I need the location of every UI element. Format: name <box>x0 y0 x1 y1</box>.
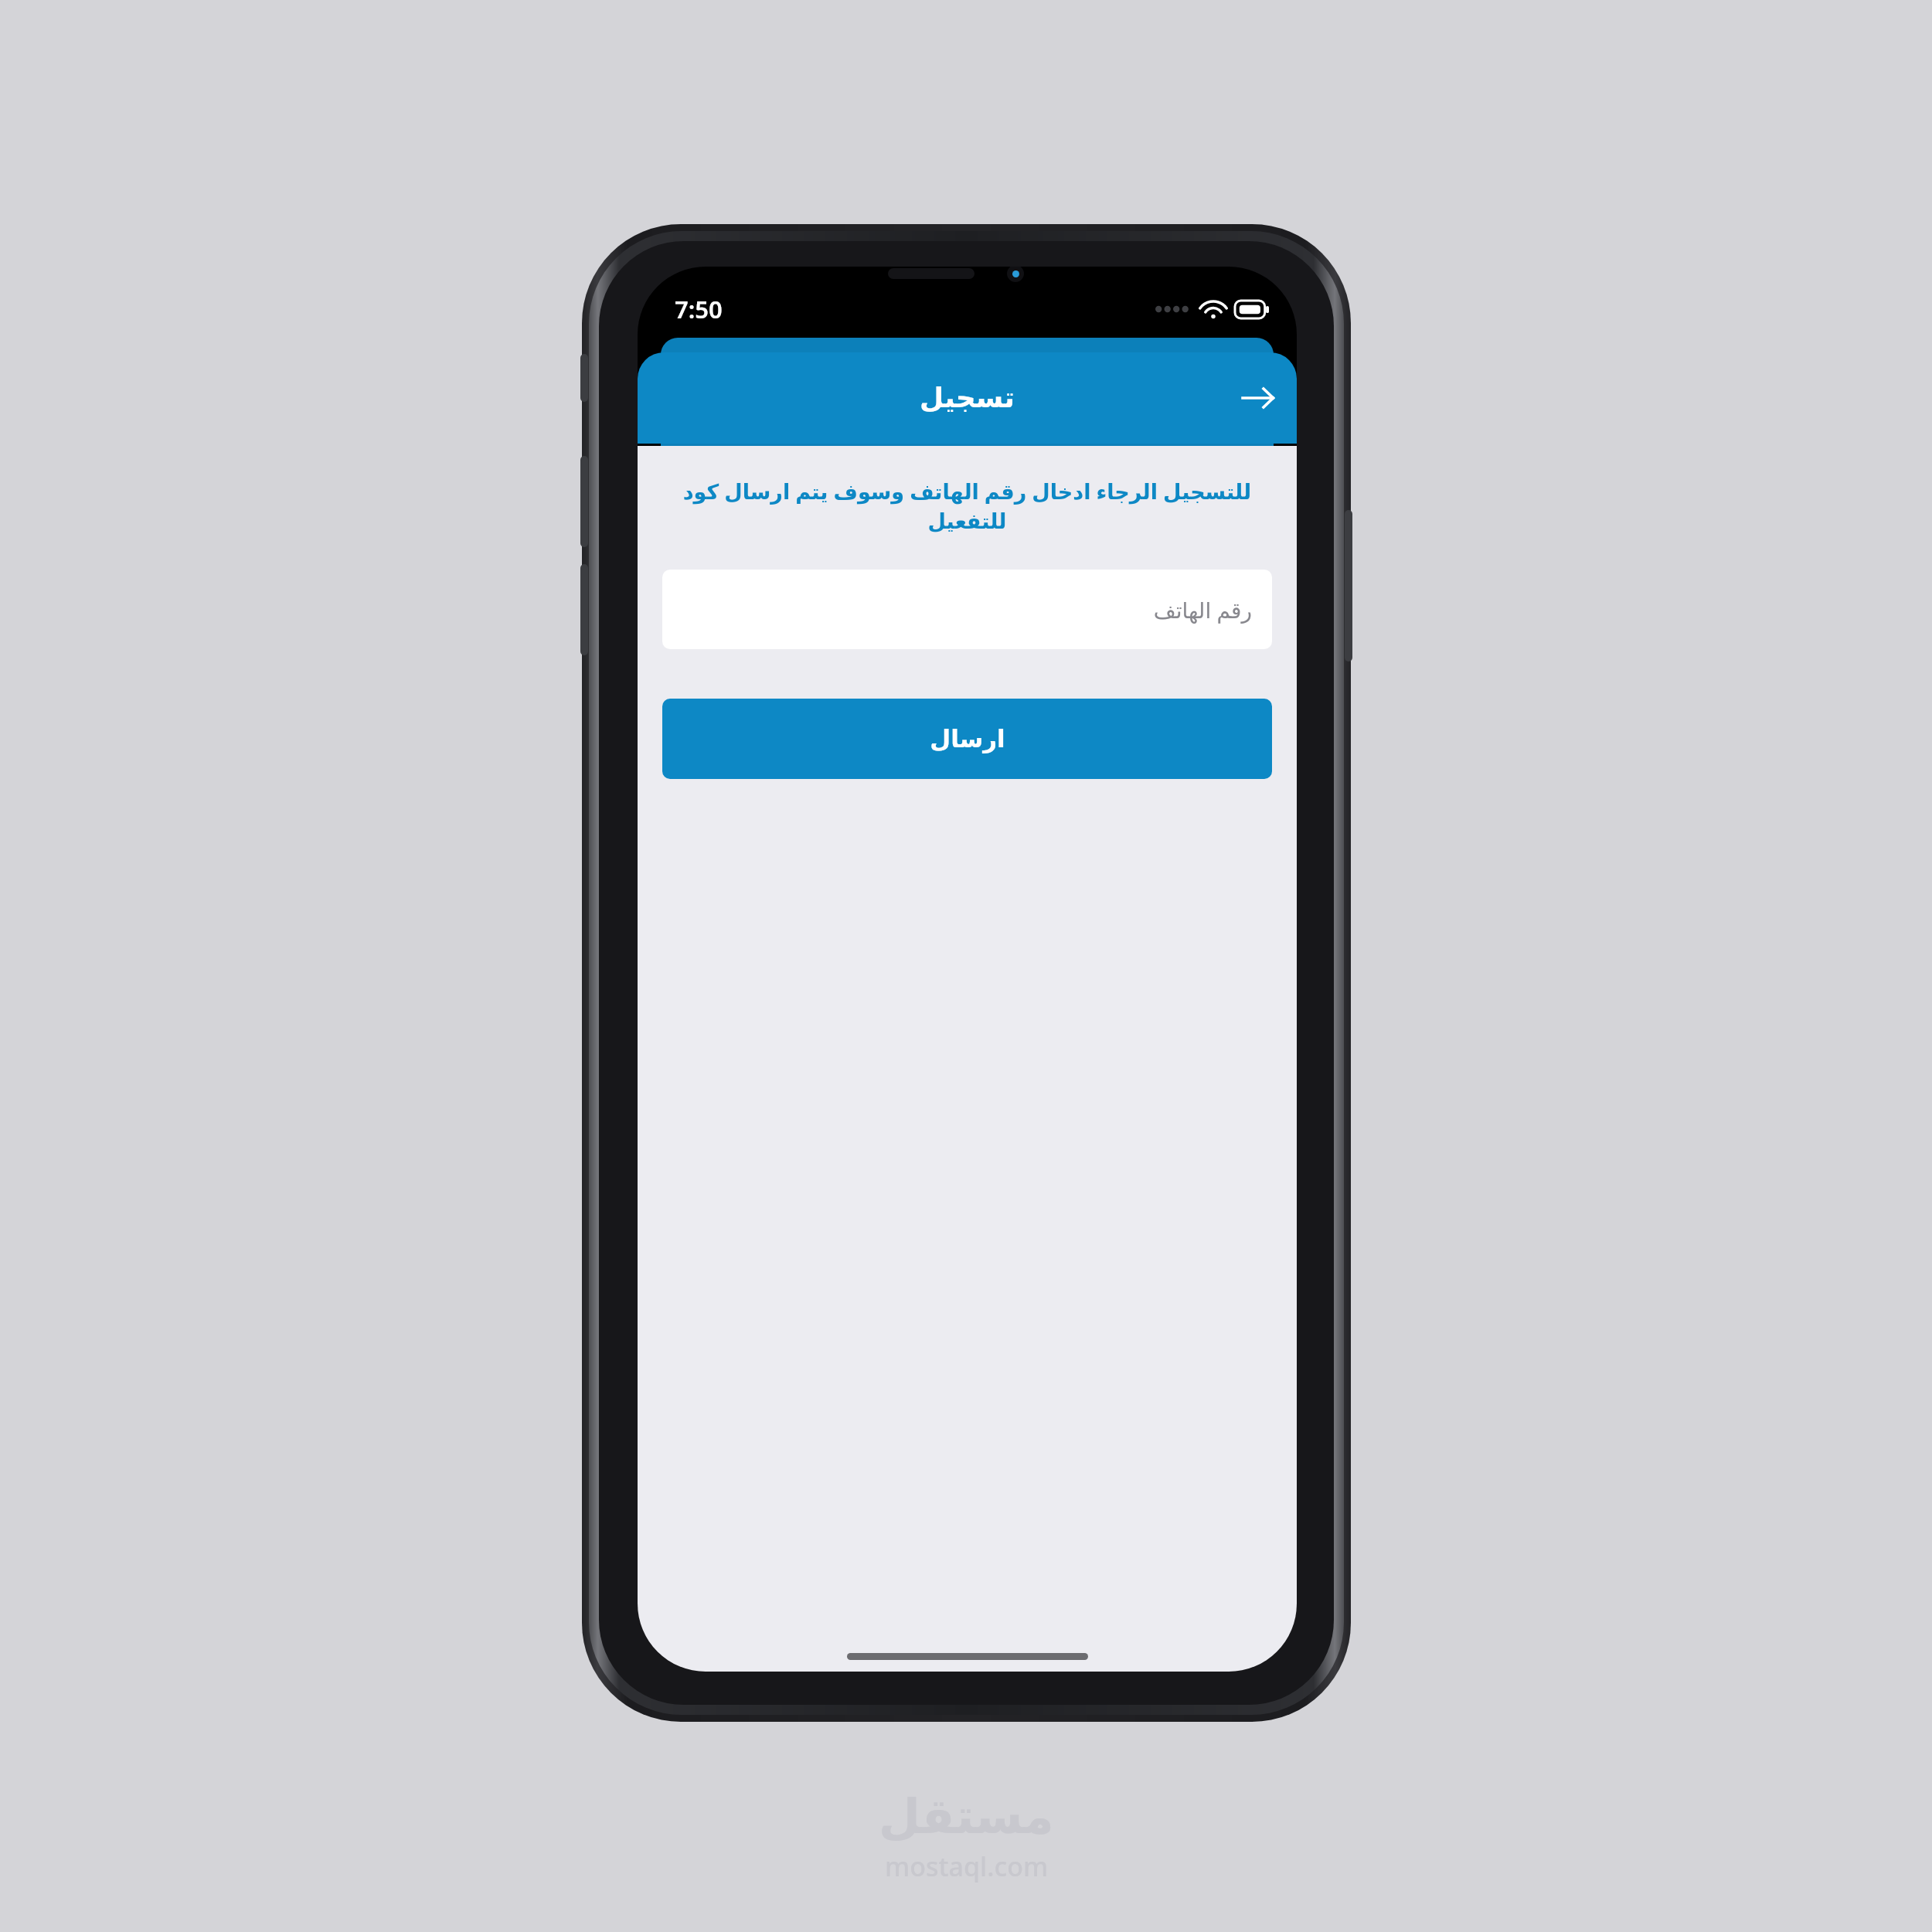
button[interactable]: Next <box>1232 372 1284 424</box>
button[interactable]: رقم الهاتف <box>662 570 1272 649</box>
staticText: تسجيل <box>920 382 1015 414</box>
staticText: mostaql.com <box>885 1849 1049 1884</box>
staticText: ارسال <box>930 725 1005 753</box>
staticText: 7:50 <box>675 293 723 325</box>
button[interactable]: ارسال <box>662 699 1272 779</box>
staticText: رقم الهاتف <box>1153 595 1252 624</box>
staticText: مستقل <box>879 1788 1054 1844</box>
staticText: للتسجيل الرجاء ادخال رقم الهاتف وسوف يتم… <box>664 477 1270 534</box>
